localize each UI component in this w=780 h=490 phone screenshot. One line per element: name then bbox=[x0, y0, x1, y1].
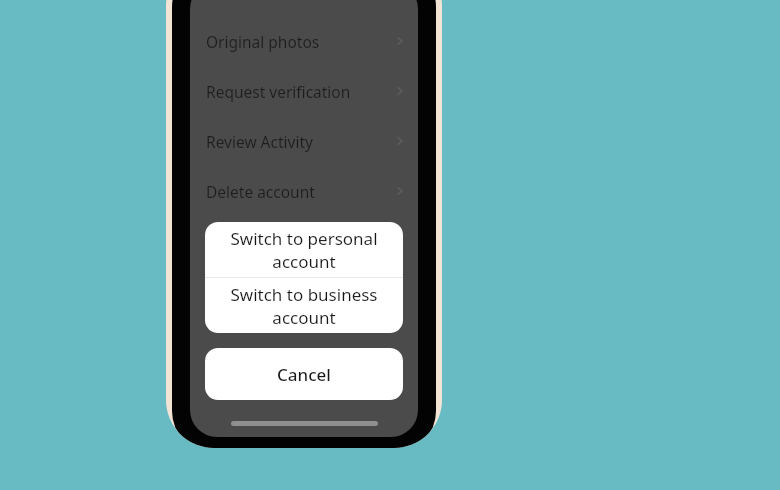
other: Open Original photos bbox=[394, 35, 406, 47]
staticText: Switch to business account bbox=[205, 283, 403, 329]
button[interactable]: Switch to business account bbox=[205, 278, 403, 333]
staticText: Original photos bbox=[206, 31, 394, 52]
button[interactable]: Delete account bbox=[190, 166, 418, 216]
button[interactable]: Request verification bbox=[190, 66, 418, 116]
staticText: Switch account type bbox=[206, 231, 406, 252]
staticText: Switch to personal account bbox=[205, 227, 403, 273]
button[interactable]: Switch account type bbox=[190, 216, 418, 266]
staticText: Review Activity bbox=[206, 131, 394, 152]
other: Open Review Activity bbox=[394, 135, 406, 147]
staticText: Request verification bbox=[206, 81, 394, 102]
staticText: Delete account bbox=[206, 181, 394, 202]
button[interactable]: Original photos bbox=[190, 16, 418, 66]
other: Open Delete account bbox=[394, 185, 406, 197]
button[interactable]: Review Activity bbox=[190, 116, 418, 166]
staticText: Cancel bbox=[277, 363, 331, 386]
button[interactable]: Switch to personal account bbox=[205, 222, 403, 277]
other: Open Request verification bbox=[394, 85, 406, 97]
button[interactable]: Cancel bbox=[205, 348, 403, 400]
